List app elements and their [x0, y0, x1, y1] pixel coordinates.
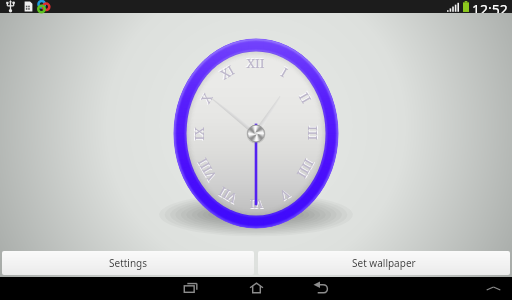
button[interactable]: Set wallpaper [258, 251, 510, 275]
staticText: 12:52 [472, 0, 508, 13]
button[interactable]: Back [289, 277, 354, 300]
button[interactable]: Recent apps [159, 277, 224, 300]
staticText: Settings [109, 256, 148, 270]
button[interactable]: Show navigation bar [474, 277, 512, 300]
button[interactable]: Home [224, 277, 289, 300]
staticText: Set wallpaper [352, 256, 416, 270]
button[interactable]: Settings [2, 251, 254, 275]
